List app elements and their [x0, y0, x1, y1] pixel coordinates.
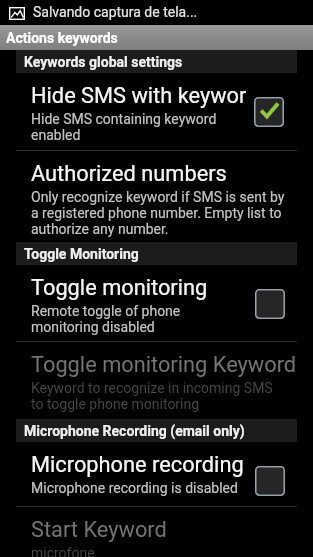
staticText: Authorized numbers: [31, 161, 227, 187]
staticText: Keywords global settings: [24, 54, 183, 70]
button[interactable]: Unchecked: [255, 466, 285, 496]
staticText: Toggle monitoring: [31, 275, 208, 301]
staticText: Microphone recording: [31, 452, 244, 478]
staticText: microfone: [31, 545, 95, 557]
staticText: Toggle monitoring Keyword: [31, 352, 297, 378]
staticText: Salvando captura de tela...: [33, 4, 198, 20]
staticText: Toggle Monitoring: [24, 246, 139, 262]
staticText: Microphone Recording (email only): [24, 423, 245, 439]
staticText: Hide SMS containing keyword enabled: [31, 111, 242, 143]
button[interactable]: Unchecked: [255, 289, 285, 319]
staticText: Keyword to recognize in incoming SMS to …: [31, 380, 285, 412]
staticText: Microphone recording is disabled: [31, 480, 238, 496]
staticText: Hide SMS with keyword: [31, 83, 246, 109]
staticText: Start Keyword: [31, 517, 167, 543]
button[interactable]: Checked: [254, 97, 284, 127]
staticText: Remote toggle of phone monitoring disabl…: [31, 303, 242, 335]
staticText: Actions keywords: [6, 30, 118, 46]
staticText: Only recognize keyword if SMS is sent by…: [31, 189, 285, 237]
